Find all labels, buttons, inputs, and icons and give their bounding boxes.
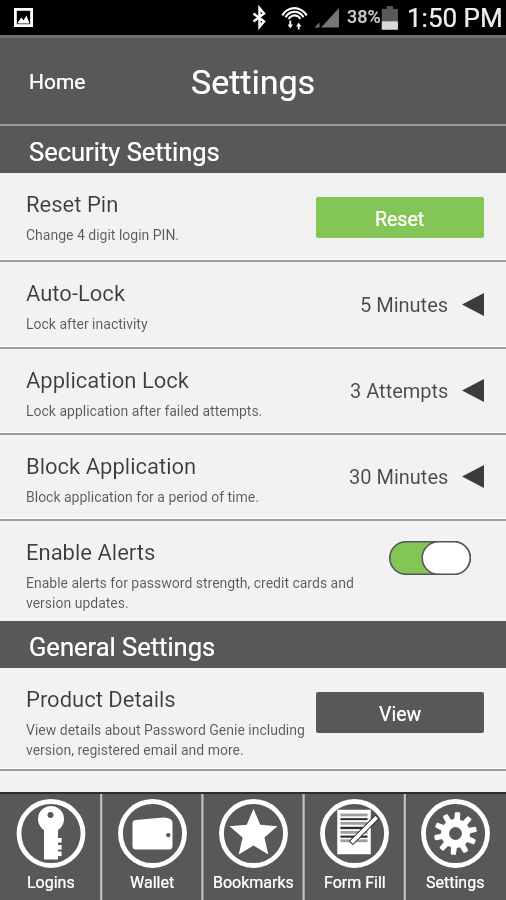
button[interactable]: Auto-Lock (0, 262, 506, 346)
button[interactable]: Wallet (102, 794, 203, 900)
staticText: 3 Attempts (350, 379, 449, 402)
staticText: Bookmarks (213, 873, 294, 892)
button[interactable]: 30 Minutes (349, 457, 484, 496)
staticText: Block application for a period of time. (26, 489, 259, 505)
staticText: Wallet (130, 873, 175, 892)
staticText: General Settings (29, 632, 216, 662)
staticText: Security Settings (29, 137, 220, 167)
button[interactable]: Reset (316, 197, 484, 238)
button[interactable]: Bookmarks (203, 794, 304, 900)
staticText: Settings (191, 62, 316, 102)
button[interactable]: Enable Alerts (0, 521, 506, 621)
staticText: Lock application after failed attempts. (26, 403, 263, 419)
button[interactable]: Enable alerts toggle (389, 541, 471, 575)
button[interactable]: 3 Attempts (350, 371, 484, 410)
staticText: Lock after inactivity (26, 316, 148, 332)
staticText: View details about Password Genie includ… (26, 722, 305, 758)
button[interactable]: Settings (405, 794, 506, 900)
staticText: 1:50 PM (407, 3, 503, 33)
staticText: Form Fill (324, 873, 386, 892)
staticText: Product Details (26, 687, 176, 713)
staticText: Application Lock (26, 368, 190, 394)
staticText: 5 Minutes (360, 293, 449, 316)
staticText: Reset (375, 208, 425, 231)
button[interactable]: Block Application (0, 435, 506, 518)
button[interactable]: Home (0, 56, 102, 103)
staticText: Auto-Lock (26, 281, 126, 307)
button[interactable]: Reset Pin (0, 173, 506, 259)
staticText: 38% (347, 6, 381, 27)
button[interactable]: Form Fill (304, 794, 405, 900)
button[interactable]: Application Lock (0, 349, 506, 432)
staticText: View (379, 703, 422, 726)
button[interactable]: 5 Minutes (360, 285, 484, 324)
button[interactable]: Product Details (0, 668, 506, 768)
staticText: Block Application (26, 454, 197, 480)
button[interactable]: View (316, 692, 484, 733)
staticText: Enable alerts for password strength, cre… (26, 575, 354, 611)
staticText: Change 4 digit login PIN. (26, 227, 180, 243)
staticText: 30 Minutes (349, 465, 449, 488)
button[interactable]: Logins (0, 794, 102, 900)
staticText: Logins (27, 873, 75, 892)
staticText: Settings (426, 873, 485, 892)
staticText: Reset Pin (26, 192, 119, 218)
staticText: Enable Alerts (26, 540, 156, 566)
